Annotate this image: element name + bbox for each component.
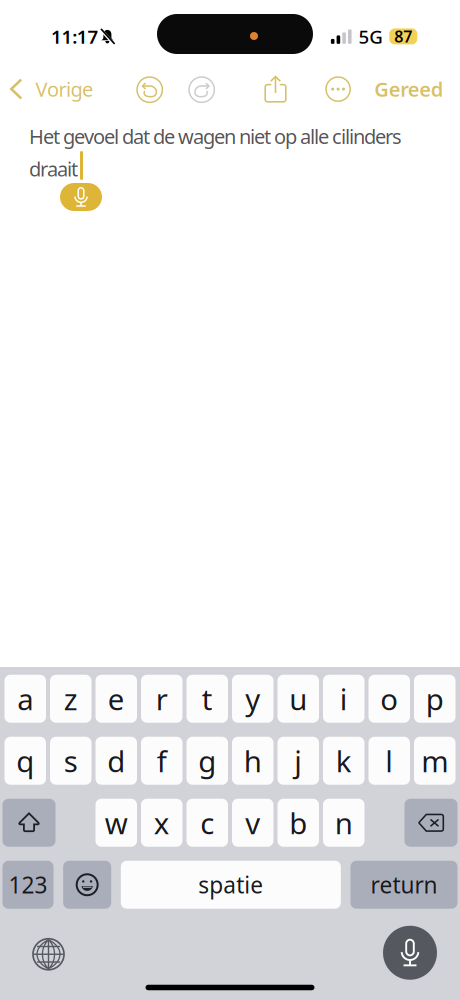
staticText: 11:17 [51, 24, 98, 49]
button[interactable]: f [141, 737, 182, 785]
staticText: Gereed [374, 76, 444, 102]
button[interactable]: Gereed [367, 67, 451, 111]
button[interactable]: c [186, 799, 228, 847]
button[interactable]: Delete [404, 799, 457, 847]
staticText: r [156, 679, 168, 718]
button[interactable]: Next keyboard [33, 939, 64, 970]
staticText: 123 [8, 870, 47, 900]
button[interactable]: w [95, 799, 137, 847]
button[interactable]: e [95, 675, 137, 723]
button[interactable]: s [50, 737, 91, 785]
staticText: f [157, 741, 167, 780]
button[interactable]: Undo [137, 77, 162, 102]
staticText: n [335, 803, 353, 842]
button[interactable]: More [326, 77, 350, 101]
staticText: 87 [394, 26, 412, 47]
button[interactable]: d [95, 737, 137, 785]
button[interactable]: m [414, 737, 455, 785]
button[interactable]: spatie [121, 861, 341, 909]
staticText: z [64, 679, 78, 718]
staticText: g [198, 741, 216, 780]
button[interactable]: i [323, 675, 364, 723]
staticText: q [16, 741, 34, 780]
button[interactable]: q [4, 737, 46, 785]
button[interactable]: Dictate [60, 183, 102, 211]
button[interactable]: Dictate [383, 926, 437, 980]
button[interactable]: u [277, 675, 319, 723]
staticText: Het gevoel dat de wagen niet op alle cil… [29, 123, 402, 182]
button[interactable]: Share [264, 75, 287, 103]
staticText: t [202, 679, 213, 718]
button[interactable]: r [141, 675, 182, 723]
staticText: h [244, 741, 262, 780]
staticText: y [245, 679, 260, 718]
button[interactable]: v [232, 799, 273, 847]
staticText: Vorige [35, 76, 93, 102]
button[interactable]: a [4, 675, 46, 723]
staticText: m [421, 741, 448, 780]
button[interactable]: t [186, 675, 228, 723]
staticText: x [154, 803, 170, 842]
staticText: b [289, 803, 307, 842]
button[interactable]: return [350, 861, 457, 909]
staticText: v [245, 803, 260, 842]
button[interactable]: l [368, 737, 410, 785]
button[interactable]: b [277, 799, 319, 847]
button[interactable]: h [232, 737, 273, 785]
staticText: i [340, 679, 348, 718]
button[interactable]: Vorige [0, 60, 101, 104]
button[interactable]: n [323, 799, 364, 847]
button[interactable]: o [368, 675, 410, 723]
staticText: p [426, 679, 444, 718]
button[interactable]: Redo [189, 77, 214, 102]
staticText: u [289, 679, 307, 718]
staticText: k [336, 741, 352, 780]
staticText: w [105, 803, 128, 842]
staticText: j [294, 741, 302, 780]
staticText: return [370, 870, 437, 900]
button[interactable]: g [186, 737, 228, 785]
button[interactable]: j [277, 737, 319, 785]
staticText: 5G [358, 24, 383, 49]
staticText: a [17, 679, 33, 718]
button[interactable]: x [141, 799, 182, 847]
staticText: c [200, 803, 214, 842]
button[interactable]: 123 [2, 861, 53, 909]
staticText: spatie [198, 870, 263, 900]
staticText: e [108, 679, 125, 718]
staticText: s [64, 741, 78, 780]
button[interactable]: p [414, 675, 455, 723]
staticText: l [385, 741, 393, 780]
staticText: d [107, 741, 125, 780]
staticText: o [380, 679, 398, 718]
button[interactable]: z [50, 675, 91, 723]
button[interactable]: y [232, 675, 273, 723]
button[interactable]: k [323, 737, 364, 785]
button[interactable]: Shift [2, 799, 55, 847]
button[interactable]: Emoji [63, 861, 111, 909]
